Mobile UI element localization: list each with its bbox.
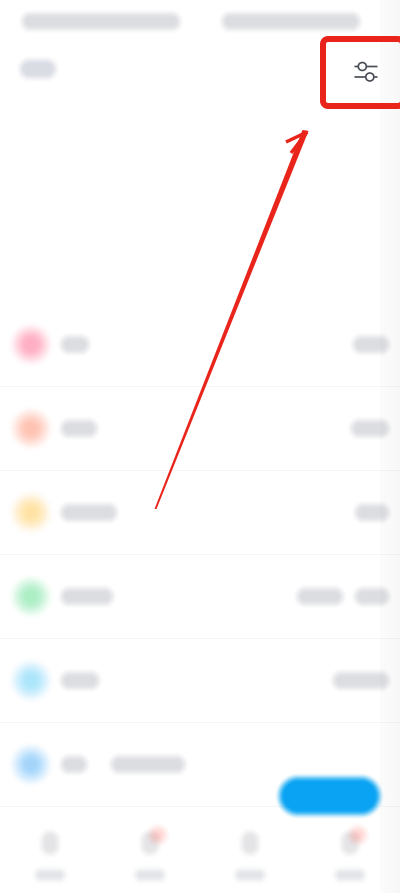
button[interactable]: Tab <box>300 815 400 893</box>
button[interactable]: Filters <box>344 50 388 94</box>
button[interactable] <box>0 303 400 387</box>
button[interactable] <box>0 471 400 555</box>
button[interactable]: Continue <box>262 760 397 832</box>
button[interactable] <box>0 723 400 807</box>
button[interactable] <box>0 639 400 723</box>
button[interactable] <box>0 555 400 639</box>
button[interactable]: Tab <box>200 815 300 893</box>
button[interactable] <box>0 387 400 471</box>
button[interactable]: Back <box>2 45 74 93</box>
button[interactable]: Tab <box>100 815 200 893</box>
button[interactable]: Tab <box>0 815 100 893</box>
